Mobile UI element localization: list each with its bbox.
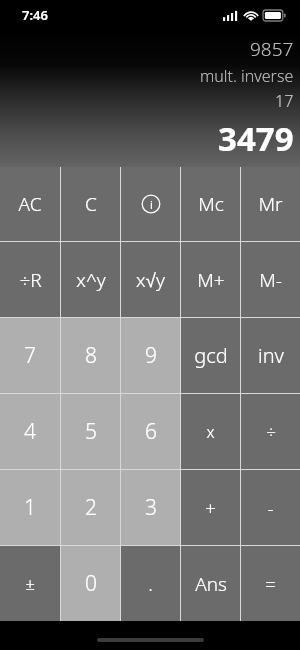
staticText: 2: [85, 493, 97, 522]
button[interactable]: x: [181, 394, 240, 469]
button[interactable]: =: [241, 546, 300, 621]
button[interactable]: Mc: [181, 167, 240, 241]
button[interactable]: 6: [121, 394, 180, 469]
button[interactable]: 5: [61, 394, 120, 469]
staticText: 1: [24, 493, 36, 522]
staticText: Mr: [258, 191, 283, 217]
button[interactable]: Info: [121, 167, 180, 241]
staticText: C: [85, 191, 97, 217]
staticText: gcd: [194, 342, 228, 369]
staticText: 17: [275, 90, 294, 112]
staticText: x: [206, 421, 215, 443]
staticText: Ans: [195, 571, 227, 597]
staticText: M-: [259, 267, 282, 293]
staticText: .: [148, 571, 153, 597]
button[interactable]: 0: [61, 546, 120, 621]
button[interactable]: ±: [0, 546, 60, 621]
staticText: 9857: [250, 36, 294, 62]
button[interactable]: 4: [0, 394, 60, 469]
staticText: inv: [258, 342, 284, 369]
staticText: mult. inverse: [200, 65, 294, 87]
button[interactable]: inv: [241, 318, 300, 393]
staticText: x^y: [76, 267, 106, 293]
button[interactable]: M-: [241, 242, 300, 317]
button[interactable]: x√y: [121, 242, 180, 317]
button[interactable]: Mr: [241, 167, 300, 241]
button[interactable]: gcd: [181, 318, 240, 393]
button[interactable]: 7: [0, 318, 60, 393]
staticText: 3: [145, 493, 157, 522]
button[interactable]: 1: [0, 470, 60, 545]
staticText: ±: [25, 572, 35, 595]
staticText: ÷: [266, 420, 276, 443]
button[interactable]: 9: [121, 318, 180, 393]
button[interactable]: .: [121, 546, 180, 621]
button[interactable]: -: [241, 470, 300, 545]
staticText: ÷R: [19, 267, 42, 293]
button[interactable]: Ans: [181, 546, 240, 621]
staticText: -: [267, 495, 274, 521]
staticText: 7:46: [22, 6, 48, 24]
staticText: 8: [85, 341, 97, 370]
staticText: 6: [145, 417, 157, 446]
staticText: i: [150, 197, 153, 212]
button[interactable]: ÷: [241, 394, 300, 469]
staticText: 7: [24, 341, 36, 370]
staticText: 0: [85, 569, 97, 598]
staticText: M+: [197, 267, 225, 293]
button[interactable]: +: [181, 470, 240, 545]
button[interactable]: 2: [61, 470, 120, 545]
staticText: Mc: [198, 191, 224, 217]
staticText: 5: [85, 417, 97, 446]
staticText: 9: [145, 341, 157, 370]
button[interactable]: C: [61, 167, 120, 241]
button[interactable]: M+: [181, 242, 240, 317]
button[interactable]: 8: [61, 318, 120, 393]
staticText: +: [205, 495, 216, 521]
staticText: 3479: [218, 116, 294, 161]
staticText: AC: [18, 191, 42, 217]
button[interactable]: x^y: [61, 242, 120, 317]
button[interactable]: AC: [0, 167, 60, 241]
staticText: x√y: [136, 267, 165, 293]
button[interactable]: 3: [121, 470, 180, 545]
button[interactable]: ÷R: [0, 242, 60, 317]
staticText: 4: [24, 417, 36, 446]
staticText: =: [265, 571, 276, 597]
